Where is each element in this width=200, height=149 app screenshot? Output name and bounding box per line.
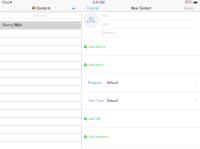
button[interactable]: add phone <box>82 38 200 56</box>
button[interactable]: Add Photo <box>84 13 98 27</box>
staticText: Search <box>36 14 47 17</box>
staticText: photo <box>87 20 96 23</box>
button[interactable]: Done <box>183 5 194 12</box>
staticText: Cancel <box>86 6 98 10</box>
button[interactable]: Text Tone <box>82 92 200 110</box>
staticText: add URL <box>88 117 101 121</box>
staticText: Text Tone <box>88 99 104 103</box>
staticText: 9:41 AM <box>92 0 104 4</box>
button[interactable]: Add Contact <box>70 5 76 11</box>
staticText: iPad <box>2 0 9 4</box>
staticText: add email <box>88 63 104 67</box>
button[interactable]: Nancy <box>0 21 81 29</box>
staticText: First <box>101 14 108 18</box>
button[interactable]: add address <box>82 128 200 146</box>
button[interactable]: Ringtone <box>82 74 200 92</box>
staticText: All Contacts <box>32 6 51 10</box>
staticText: New Contact <box>131 6 151 10</box>
button[interactable]: add email <box>82 56 200 74</box>
button[interactable]: add URL <box>82 110 200 128</box>
staticText: Company <box>101 31 116 35</box>
staticText: Default <box>107 81 118 85</box>
staticText: Ringtone <box>88 81 102 85</box>
staticText: Nancy <box>3 23 15 27</box>
staticText: add phone <box>88 45 105 49</box>
staticText: add address <box>88 135 108 139</box>
staticText: Last <box>101 23 108 26</box>
staticText: Done <box>184 6 193 10</box>
staticText: 100% <box>185 1 193 4</box>
staticText: Default <box>107 99 118 103</box>
staticText: Muir <box>15 23 22 27</box>
staticText: add <box>89 17 94 20</box>
button[interactable]: Cancel <box>85 5 99 12</box>
